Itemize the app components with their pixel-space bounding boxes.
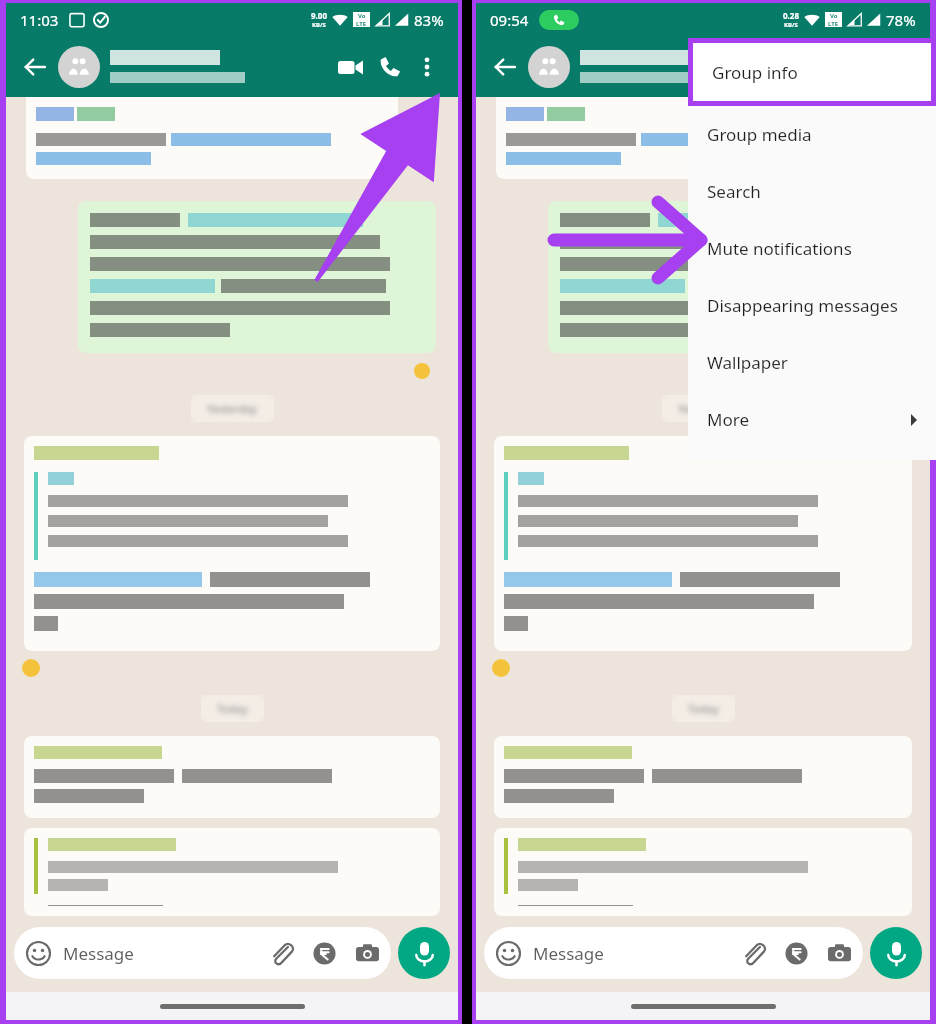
staticText: 78%: [886, 10, 916, 30]
staticText: LTE: [356, 20, 367, 27]
staticText: 83%: [414, 10, 444, 30]
staticText: Mute notifications: [707, 237, 852, 260]
staticText: Wallpaper: [707, 351, 788, 374]
button[interactable]: Voice message: [870, 927, 922, 979]
button[interactable]: More options: [410, 50, 444, 84]
button[interactable]: Wallpaper: [688, 334, 936, 391]
staticText: Search: [707, 180, 761, 203]
staticText: Today: [217, 701, 248, 716]
staticText: Group info: [712, 61, 798, 84]
staticText: KB/S: [312, 21, 326, 29]
button[interactable]: Group info: [693, 43, 931, 101]
button[interactable]: Voice call: [370, 47, 410, 87]
button[interactable]: Back: [486, 48, 524, 86]
button[interactable]: Disappearing messages: [688, 277, 936, 334]
staticText: 09:54: [490, 10, 529, 30]
staticText: 0.28: [783, 10, 799, 21]
button[interactable]: Message: [26, 927, 379, 979]
staticText: Vo: [830, 12, 838, 20]
staticText: Message: [533, 942, 604, 965]
button[interactable]: Search: [688, 163, 936, 220]
button[interactable]: Voice message: [398, 927, 450, 979]
staticText: 11:03: [20, 10, 59, 30]
button[interactable]: More: [688, 391, 936, 448]
button[interactable]: Group media: [688, 106, 936, 163]
button[interactable]: Message: [496, 927, 851, 979]
staticText: More: [707, 408, 749, 431]
button[interactable]: [528, 36, 916, 97]
staticText: LTE: [828, 20, 839, 27]
staticText: 9.00: [311, 10, 327, 21]
staticText: Vo: [358, 12, 366, 20]
button[interactable]: Back: [16, 48, 54, 86]
staticText: Group media: [707, 123, 812, 146]
staticText: Message: [63, 942, 134, 965]
button[interactable]: Video call: [330, 47, 370, 87]
staticText: Yesterday: [207, 401, 258, 416]
staticText: Disappearing messages: [707, 294, 898, 317]
staticText: KB/S: [784, 21, 798, 29]
staticText: Yesterday: [678, 401, 729, 416]
staticText: Today: [688, 701, 719, 716]
button[interactable]: [58, 36, 330, 97]
button[interactable]: Mute notifications: [688, 220, 936, 277]
